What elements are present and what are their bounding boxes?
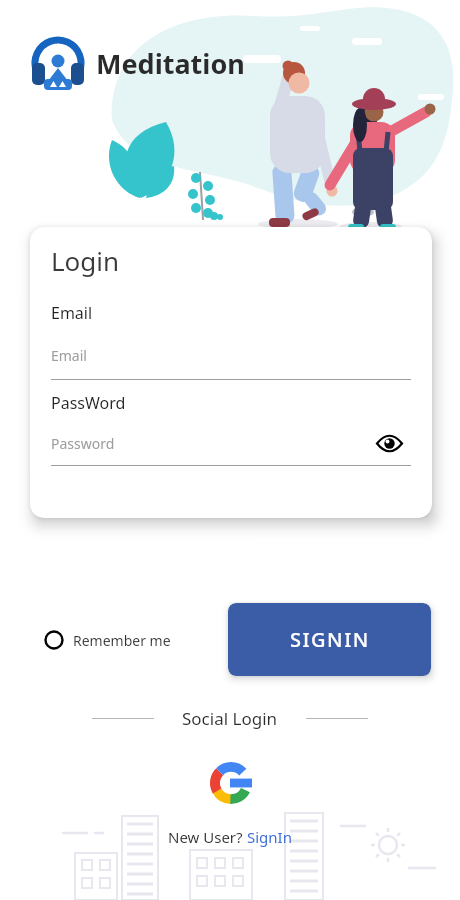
button[interactable]: SignIn xyxy=(247,827,292,847)
staticText: Meditation xyxy=(96,45,245,82)
staticText: Login xyxy=(51,243,120,278)
button[interactable] xyxy=(207,759,254,806)
staticText: Email xyxy=(51,346,87,365)
staticText: Password xyxy=(51,434,375,453)
staticText: New User? xyxy=(168,827,247,847)
staticText: Remember me xyxy=(73,631,171,650)
staticText: Social Login xyxy=(182,707,278,730)
button[interactable]: Remember me xyxy=(44,630,171,650)
staticText: PassWord xyxy=(51,392,126,414)
button[interactable]: SIGNIN xyxy=(228,603,431,676)
staticText: SIGNIN xyxy=(290,626,370,653)
staticText: Email xyxy=(51,302,93,324)
button[interactable]: Email xyxy=(51,346,411,365)
button[interactable]: Password xyxy=(51,434,411,453)
